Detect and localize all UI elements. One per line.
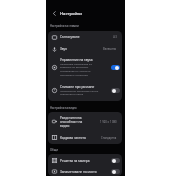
staticText: Разделителна способност на видео	[60, 116, 84, 128]
button[interactable]: Звук	[48, 43, 122, 55]
button[interactable]: Управление на звука	[48, 55, 122, 79]
staticText: Общи	[50, 148, 58, 152]
button[interactable]: Кадрова честота	[48, 131, 122, 144]
staticText: Звук	[60, 47, 101, 51]
button[interactable]: Снимане при ръчкане	[48, 79, 122, 101]
button[interactable]: Съгласуване	[48, 31, 122, 43]
button[interactable]: Разделителна способност на видео	[48, 112, 122, 131]
staticText: Стандартна	[101, 136, 117, 140]
button[interactable]: Запаметяване на място	[48, 167, 122, 176]
button[interactable]: Back	[50, 9, 59, 18]
staticText: Настройки за видео	[50, 106, 77, 110]
staticText: Управление на звука	[60, 58, 109, 62]
staticText: Включено	[103, 47, 117, 51]
button[interactable]: Switch off	[111, 158, 120, 163]
button[interactable]: Switch off	[111, 169, 120, 174]
staticText: Позволява управление на камерата на аксе…	[60, 62, 100, 76]
staticText: Снимане при ръчкане	[60, 85, 109, 89]
staticText: 4:3	[113, 35, 117, 39]
staticText: Настройки за снимки	[50, 24, 79, 28]
button[interactable]: Switch on	[111, 65, 120, 70]
button[interactable]: Switch off	[111, 88, 120, 93]
staticText: Запаметяване на място	[60, 170, 109, 174]
staticText: Съгласуване	[60, 35, 111, 39]
staticText: 1 920 x 1 080	[100, 120, 117, 124]
staticText: Решетка за камера	[60, 159, 109, 163]
staticText: Кадрова честота	[60, 136, 99, 140]
button[interactable]: Решетка за камера	[48, 154, 122, 167]
staticText: Настройки	[60, 11, 82, 17]
staticText: Автоматично заснемане когато светлината …	[60, 89, 100, 95]
